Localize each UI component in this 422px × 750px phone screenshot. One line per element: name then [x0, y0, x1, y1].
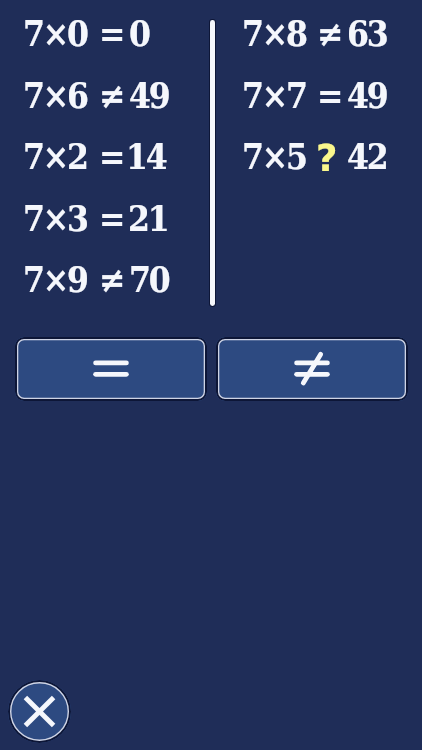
staticText: 21 [128, 198, 168, 239]
staticText: 7×8 [242, 13, 306, 54]
staticText: = [317, 75, 342, 116]
staticText: 63 [347, 13, 387, 54]
staticText: ? [316, 137, 338, 180]
staticText: 7×6 [23, 75, 87, 116]
staticText: 7×5 [242, 136, 306, 177]
staticText: 7×0 [23, 13, 87, 54]
staticText: 42 [347, 136, 387, 177]
staticText: 7×2 [23, 136, 87, 177]
staticText: 0 [129, 13, 149, 54]
staticText: 49 [129, 75, 169, 116]
staticText: 70 [129, 259, 169, 300]
staticText: 7×7 [242, 75, 306, 116]
staticText: = [99, 13, 124, 54]
staticText: ≠ [99, 75, 124, 116]
staticText: 14 [126, 136, 166, 177]
staticText: 7×3 [23, 198, 87, 239]
button[interactable]: Not equals [216, 337, 408, 401]
button[interactable]: Close [8, 680, 71, 743]
staticText: ≠ [99, 259, 124, 300]
button[interactable]: Equals [15, 337, 207, 401]
staticText: ≠ [317, 13, 342, 54]
staticText: = [99, 136, 124, 177]
staticText: 7×9 [23, 259, 87, 300]
staticText: 49 [347, 75, 387, 116]
staticText: = [99, 198, 124, 239]
